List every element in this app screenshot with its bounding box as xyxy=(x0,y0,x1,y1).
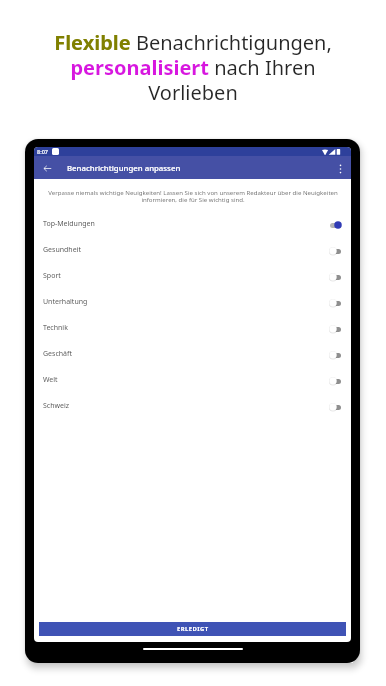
staticText: Geschäft xyxy=(43,349,72,359)
staticText: 8:07 xyxy=(37,148,48,155)
button[interactable]: Schweiz xyxy=(34,392,351,418)
staticText: Gesundheit xyxy=(43,245,81,255)
staticText: Benachrichtigungen anpassen xyxy=(67,163,181,174)
button[interactable]: Back xyxy=(34,156,57,179)
button[interactable]: Top-Meldungen xyxy=(34,210,351,236)
staticText: Schweiz xyxy=(43,401,70,411)
button[interactable]: Sport xyxy=(34,262,351,288)
staticText: Technik xyxy=(43,323,68,333)
button[interactable]: ERLEDIGT xyxy=(39,622,346,636)
staticText: Flexible Benachrichtigungen, personalisi… xyxy=(33,29,353,106)
button[interactable]: Welt xyxy=(34,366,351,392)
staticText: Top-Meldungen xyxy=(43,219,95,229)
staticText: ERLEDIGT xyxy=(177,625,209,633)
staticText: Welt xyxy=(43,375,58,385)
button[interactable]: More options xyxy=(331,158,351,178)
button[interactable]: Geschäft xyxy=(34,340,351,366)
button[interactable]: Gesundheit xyxy=(34,236,351,262)
button[interactable]: Unterhaltung xyxy=(34,288,351,314)
button[interactable]: Technik xyxy=(34,314,351,340)
staticText: Verpasse niemals wichtige Neuigkeiten! L… xyxy=(48,188,338,204)
staticText: Sport xyxy=(43,271,61,281)
staticText: Unterhaltung xyxy=(43,297,88,307)
